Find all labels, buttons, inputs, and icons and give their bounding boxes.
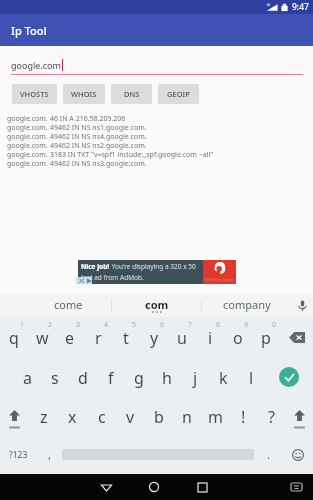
button[interactable]: DNS [111,84,152,104]
button[interactable]: GEOIP [158,84,199,104]
button[interactable]: AdMob by Google [203,260,236,284]
staticText: r [95,327,102,349]
staticText: 1 [20,320,25,330]
button[interactable]: g [125,357,153,396]
staticText: k [219,367,228,389]
staticText: e [65,327,75,349]
button[interactable]: q [0,317,28,357]
button[interactable]: b [145,396,173,435]
staticText: 5 [132,320,137,330]
button[interactable]: a [13,357,41,396]
staticText: a [23,367,32,389]
button[interactable]: p [252,317,280,357]
button[interactable]: Back [82,474,130,500]
button[interactable]: k [209,357,237,396]
button[interactable]: Switch keyboard [279,474,313,500]
button[interactable]: d [69,357,97,396]
staticText: ? [268,406,275,428]
button[interactable]: y [140,317,168,357]
staticText: 3183 IN TXT "v=spf1 include:_spf.google.… [50,150,214,159]
staticText: j [193,367,198,389]
staticText: 6 [160,320,165,330]
staticText: com [145,297,169,312]
staticText: google.com [11,59,61,71]
staticText: company [223,297,271,312]
staticText: u [177,327,187,349]
button[interactable]: c [87,396,116,435]
button[interactable]: m [201,396,229,435]
button[interactable]: Close ad [76,277,92,284]
button[interactable]: r [84,317,112,357]
staticText: s [51,367,59,389]
staticText: 2 [48,320,53,330]
button[interactable]: w [28,317,56,357]
staticText: t [123,327,129,349]
button[interactable]: v [116,396,145,435]
button[interactable]: Shift [0,396,29,435]
button[interactable]: Voice input [292,294,313,317]
button[interactable]: l [237,357,265,396]
button[interactable]: Recents [178,474,226,500]
button[interactable]: ! [229,396,257,435]
staticText: 7 [188,320,193,330]
staticText: l [249,367,254,389]
staticText: 3 [76,320,81,330]
button[interactable]: o [224,317,252,357]
staticText: 8 [216,320,221,330]
button[interactable]: i [196,317,224,357]
staticText: google.com. [7,132,50,141]
staticText: google.com. [7,141,50,150]
button[interactable]: com [112,294,201,317]
button[interactable] [62,435,254,474]
button[interactable]: x [58,396,87,435]
button[interactable]: VHOSTS [12,84,57,104]
staticText: 49462 IN NS ns2.google.com. [50,141,147,150]
button[interactable]: n [173,396,201,435]
button[interactable]: , [36,435,62,474]
staticText: m [208,406,223,428]
staticText: google.com. [7,150,50,159]
button[interactable]: s [41,357,69,396]
staticText: 9 [244,320,249,330]
button[interactable]: ? [257,396,285,435]
staticText: p [261,327,271,349]
button[interactable]: h [153,357,181,396]
staticText: y [150,327,159,349]
staticText: z [40,406,48,428]
button[interactable]: ?123 [0,435,36,474]
staticText: f [108,367,114,389]
button[interactable]: f [97,357,125,396]
button[interactable]: t [112,317,140,357]
staticText: v [126,406,135,428]
staticText: q [9,327,19,349]
staticText: b [154,406,164,428]
button[interactable]: company [202,294,292,317]
staticText: 49462 IN NS ns1.google.com. [50,123,147,132]
staticText: w [36,327,49,349]
staticText: i [208,327,213,349]
button[interactable]: j [181,357,209,396]
button[interactable]: Shift [285,396,313,435]
button[interactable]: Emoji [282,435,313,474]
button[interactable]: Nice job! [78,260,203,284]
button[interactable]: Home [130,474,178,500]
button[interactable]: z [29,396,58,435]
staticText: google.com. [7,159,50,168]
staticText: ! [241,406,246,428]
staticText: Ip Tool [11,23,47,38]
staticText: AdMob by Google [205,277,235,282]
button[interactable]: Enter [265,357,313,396]
staticText: g [134,367,144,389]
button[interactable]: WHOIS [63,84,105,104]
button[interactable]: u [168,317,196,357]
staticText: 4 [104,320,109,330]
button[interactable]: come [25,294,111,317]
staticText: google.com. [7,114,50,123]
staticText: , [48,447,51,462]
staticText: n [182,406,192,428]
button[interactable]: Backspace [280,317,313,357]
button[interactable]: . [254,435,282,474]
button[interactable]: e [56,317,84,357]
staticText: h [162,367,172,389]
staticText: test ad from AdMob. [81,273,144,282]
